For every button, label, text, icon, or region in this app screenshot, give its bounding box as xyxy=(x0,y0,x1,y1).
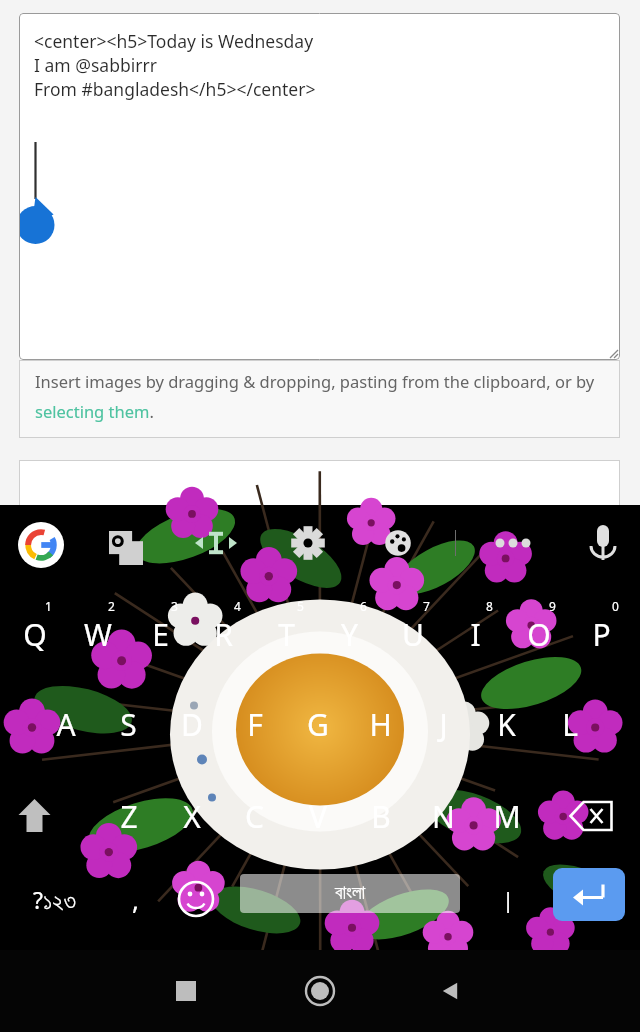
button[interactable]: বাংলা xyxy=(240,874,460,913)
staticText: C xyxy=(245,796,264,837)
staticText: 9 xyxy=(549,598,556,614)
button[interactable]: N xyxy=(412,782,475,850)
button[interactable]: V xyxy=(286,782,349,850)
staticText: T xyxy=(278,614,295,655)
button[interactable]: , xyxy=(106,868,164,930)
button[interactable]: Q xyxy=(3,600,66,668)
button[interactable]: Translate xyxy=(109,531,143,565)
button[interactable]: I xyxy=(444,600,507,668)
button[interactable]: Recent apps xyxy=(156,950,216,1032)
button[interactable]: O xyxy=(507,600,570,668)
button[interactable]: D xyxy=(160,690,223,758)
button[interactable]: Backspace xyxy=(560,782,623,850)
button[interactable]: Emoji xyxy=(168,868,224,930)
button[interactable]: G xyxy=(286,690,349,758)
staticText: O xyxy=(527,614,551,655)
staticText: F xyxy=(247,704,263,745)
staticText: J xyxy=(439,704,448,745)
staticText: 3 xyxy=(171,598,178,614)
button[interactable]: Voice input xyxy=(583,523,623,563)
button[interactable]: E xyxy=(129,600,192,668)
staticText: H xyxy=(369,704,392,745)
button[interactable]: F xyxy=(223,690,286,758)
staticText: L xyxy=(562,704,578,745)
button[interactable]: J xyxy=(412,690,475,758)
staticText: 0 xyxy=(612,598,619,614)
staticText: U xyxy=(402,614,424,655)
staticText: R xyxy=(214,614,233,655)
staticText: S xyxy=(120,704,137,745)
staticText: বাংলা xyxy=(335,884,366,903)
staticText: M xyxy=(493,796,521,837)
button[interactable]: W xyxy=(66,600,129,668)
button[interactable]: K xyxy=(475,690,538,758)
button[interactable]: Move cursor xyxy=(196,523,236,563)
staticText: B xyxy=(371,796,391,837)
staticText: N xyxy=(432,796,455,837)
button[interactable]: R xyxy=(192,600,255,668)
button[interactable]: L xyxy=(538,690,601,758)
staticText: I am @sabbirrr xyxy=(34,53,157,77)
staticText: 8 xyxy=(486,598,493,614)
button[interactable]: ?১২৩ xyxy=(4,868,104,930)
button[interactable]: Settings xyxy=(288,523,328,563)
button[interactable]: B xyxy=(349,782,412,850)
staticText: 7 xyxy=(423,598,430,614)
button[interactable]: T xyxy=(255,600,318,668)
button[interactable]: Y xyxy=(318,600,381,668)
staticText: 6 xyxy=(360,598,367,614)
button[interactable]: Theme xyxy=(378,523,418,563)
staticText: <center><h5>Today is Wednesday xyxy=(34,29,314,53)
staticText: From #bangladesh</h5></center> xyxy=(34,77,316,101)
button[interactable]: More options xyxy=(493,523,533,563)
button[interactable]: Z xyxy=(97,782,160,850)
button[interactable]: C xyxy=(223,782,286,850)
staticText: X xyxy=(183,796,201,837)
button[interactable]: X xyxy=(160,782,223,850)
staticText: , xyxy=(132,882,139,917)
button[interactable]: A xyxy=(34,690,97,758)
staticText: D xyxy=(181,704,203,745)
button[interactable]: <center><h5>Today is Wednesday xyxy=(19,13,620,360)
staticText: A xyxy=(56,704,76,745)
button[interactable]: U xyxy=(381,600,444,668)
button[interactable]: Back xyxy=(420,950,480,1032)
staticText: 4 xyxy=(234,598,241,614)
staticText: V xyxy=(309,796,327,837)
staticText: 2 xyxy=(108,598,115,614)
staticText: P xyxy=(592,614,611,655)
button[interactable]: Google search xyxy=(18,522,64,568)
staticText: ?১২৩ xyxy=(33,884,76,915)
staticText: Z xyxy=(120,796,138,837)
staticText: I xyxy=(470,614,481,655)
staticText: G xyxy=(307,704,329,745)
button[interactable]: P xyxy=(570,600,633,668)
button[interactable]: Shift xyxy=(3,782,66,850)
button[interactable]: Enter xyxy=(553,868,625,921)
staticText: Q xyxy=(23,614,47,655)
button[interactable]: | xyxy=(480,868,536,930)
button[interactable]: S xyxy=(97,690,160,758)
staticText: E xyxy=(152,614,169,655)
button[interactable]: Home xyxy=(285,950,355,1032)
staticText: K xyxy=(497,704,516,745)
staticText: | xyxy=(502,884,515,914)
staticText: W xyxy=(84,614,112,655)
staticText: Insert images by dragging & dropping, pa… xyxy=(35,370,608,423)
staticText: Y xyxy=(341,614,358,655)
button[interactable]: M xyxy=(475,782,538,850)
button[interactable]: H xyxy=(349,690,412,758)
staticText: 1 xyxy=(45,598,52,614)
staticText: 5 xyxy=(297,598,304,614)
